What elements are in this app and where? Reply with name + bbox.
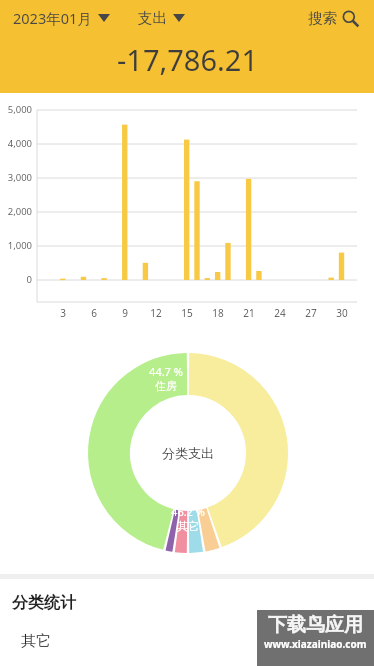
staticText: -17,786.21	[117, 40, 258, 79]
staticText: 9	[122, 306, 128, 320]
button[interactable]: 搜索	[306, 3, 361, 33]
button[interactable]: 支出	[136, 3, 187, 33]
staticText: 15	[181, 306, 193, 320]
staticText: www.xiazainiao.com	[264, 637, 367, 651]
staticText: 27	[305, 306, 317, 320]
staticText: 12	[150, 306, 162, 320]
staticText: 住房	[155, 379, 177, 393]
staticText: 30	[336, 306, 348, 320]
staticText: 2023年01月	[13, 8, 92, 28]
staticText: 1,000	[7, 239, 32, 252]
staticText: 0	[26, 273, 32, 286]
staticText: 21	[243, 306, 255, 320]
staticText: 下载鸟应用	[268, 613, 363, 637]
staticText: 6	[91, 306, 97, 320]
staticText: 2,000	[7, 205, 32, 218]
staticText: 44.7 %	[149, 364, 183, 379]
staticText: 24	[274, 306, 286, 320]
button[interactable]: 其它	[0, 630, 374, 666]
staticText: 分类支出	[162, 445, 214, 461]
staticText: 18	[212, 306, 224, 320]
staticText: 3,000	[7, 171, 32, 184]
staticText: 3	[60, 306, 66, 320]
staticText: 支出	[138, 9, 167, 27]
staticText: 46.2 %	[171, 504, 205, 519]
staticText: 4,000	[7, 137, 32, 150]
button[interactable]: 2023年01月	[11, 2, 112, 34]
staticText: 搜索	[308, 9, 337, 27]
staticText: 5,000	[7, 103, 32, 116]
staticText: 其它	[21, 632, 51, 651]
staticText: 其它	[177, 519, 199, 533]
staticText: 分类统计	[12, 593, 76, 613]
